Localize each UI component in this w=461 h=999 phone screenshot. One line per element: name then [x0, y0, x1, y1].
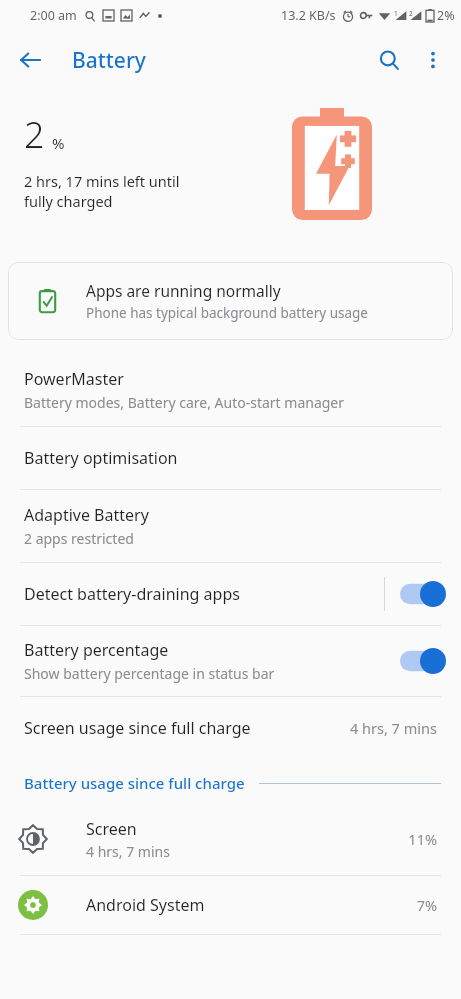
staticText: Battery	[72, 46, 146, 75]
staticText: 2 apps restricted	[24, 529, 134, 548]
button[interactable]: More options	[411, 38, 455, 82]
staticText: 2	[24, 110, 45, 159]
button[interactable]: Search	[367, 38, 411, 82]
staticText: PowerMaster	[24, 368, 124, 390]
button[interactable]: Screen	[0, 803, 461, 875]
staticText: Screen	[86, 818, 137, 840]
button[interactable]: Battery percentage	[0, 626, 461, 696]
button[interactable]: Adaptive Battery	[0, 490, 461, 562]
staticText: Battery percentage	[24, 639, 169, 661]
button[interactable]: Detect battery-draining apps	[0, 563, 461, 625]
staticText: Battery modes, Battery care, Auto-start …	[24, 393, 345, 412]
button[interactable]: Battery optimisation	[0, 427, 461, 489]
staticText: 13.2 KB/s	[281, 7, 336, 24]
staticText: 2:00 am	[30, 7, 77, 24]
button[interactable]: PowerMaster	[0, 354, 461, 426]
button[interactable]: Toggle Battery percentage	[385, 626, 461, 696]
staticText: Detect battery-draining apps	[24, 583, 240, 605]
staticText: 7%	[416, 895, 437, 915]
staticText: Phone has typical background battery usa…	[86, 304, 368, 322]
button[interactable]: Back	[8, 38, 52, 82]
button[interactable]: Toggle Detect battery-draining apps	[385, 563, 461, 625]
staticText: 2%	[437, 7, 455, 24]
staticText: 4 hrs, 7 mins	[350, 718, 437, 738]
staticText: 2	[409, 9, 413, 18]
staticText: 4 hrs, 7 mins	[86, 842, 170, 861]
button[interactable]: Android System	[0, 876, 461, 934]
staticText: Android System	[86, 894, 205, 916]
staticText: Battery usage since full charge	[24, 773, 245, 793]
staticText: Adaptive Battery	[24, 504, 149, 526]
staticText: 11%	[408, 829, 437, 849]
staticText: %	[52, 133, 65, 153]
staticText: Screen usage since full charge	[24, 717, 251, 739]
staticText: 2 hrs, 17 mins left until fully charged	[24, 171, 180, 211]
button[interactable]: Screen usage since full charge	[0, 697, 461, 759]
staticText: Show battery percentage in status bar	[24, 664, 275, 683]
staticText: Apps are running normally	[86, 280, 281, 301]
staticText: Battery optimisation	[24, 447, 178, 469]
staticText: 1	[394, 9, 398, 18]
button[interactable]: Apps are running normally	[8, 262, 453, 340]
